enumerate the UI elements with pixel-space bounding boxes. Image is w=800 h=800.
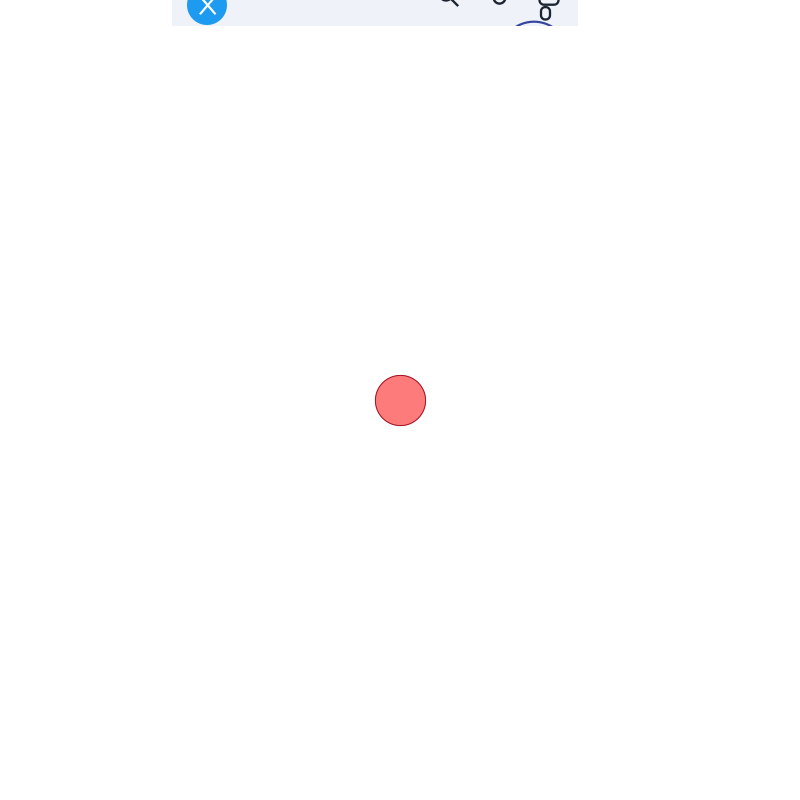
button[interactable]: Notifications — [491, 0, 507, 6]
button[interactable]: Messages — [539, 0, 559, 22]
button[interactable]: Post — [187, 0, 227, 25]
button[interactable]: Search — [437, 0, 460, 8]
